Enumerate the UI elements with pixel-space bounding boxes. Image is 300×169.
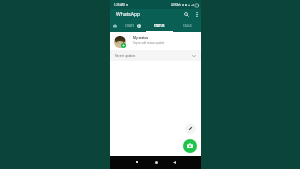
button[interactable]: More options: [192, 9, 201, 20]
button[interactable]: My status: [110, 32, 201, 50]
button[interactable]: Home: [151, 157, 161, 167]
button[interactable]: Search: [180, 9, 192, 20]
staticText: Tap to add status update: [133, 41, 165, 45]
staticText: 1:26 AM: [114, 3, 125, 7]
button[interactable]: Back: [169, 157, 179, 167]
staticText: CALLS: [183, 24, 192, 28]
button[interactable]: CALLS: [174, 20, 201, 32]
staticText: STATUS: [154, 24, 165, 28]
staticText: WhatsApp: [116, 11, 141, 18]
button[interactable]: CHATS: [120, 20, 147, 32]
button[interactable]: Recent updates: [110, 50, 201, 61]
staticText: 4.0Kb/s: [171, 3, 181, 7]
button[interactable]: Write status: [185, 123, 196, 134]
button[interactable]: Camera: [110, 20, 120, 32]
button[interactable]: Camera: [183, 139, 197, 153]
staticText: My status: [133, 36, 149, 40]
button[interactable]: STATUS: [147, 20, 174, 32]
button[interactable]: Recent apps: [132, 157, 142, 167]
staticText: Recent updates: [115, 54, 136, 58]
staticText: 2: [138, 24, 140, 28]
staticText: CHATS: [125, 24, 135, 28]
